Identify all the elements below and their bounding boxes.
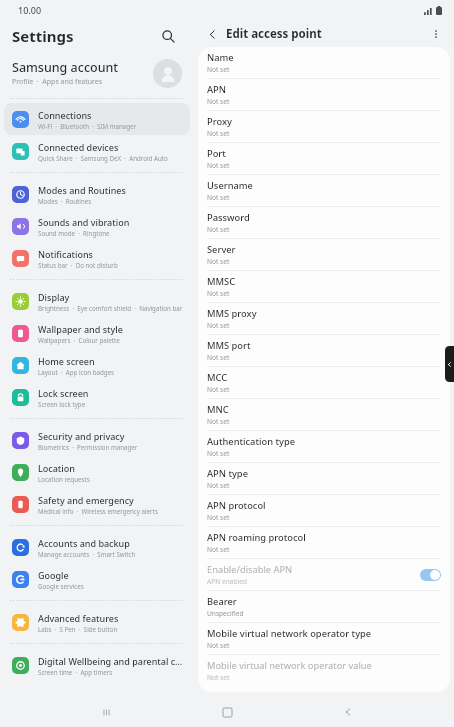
button[interactable]: Notifications bbox=[4, 242, 190, 274]
staticText: Sounds and vibration bbox=[38, 216, 130, 228]
button[interactable]: Connections bbox=[4, 103, 190, 135]
staticText: MCC bbox=[207, 371, 228, 384]
staticText: Not set bbox=[207, 641, 230, 650]
button[interactable]: Enable/disable APN bbox=[198, 559, 450, 590]
staticText: Modes and Routines bbox=[38, 184, 126, 196]
button[interactable]: Password bbox=[198, 207, 450, 238]
staticText: Safety and emergency bbox=[38, 494, 134, 506]
staticText: Proxy bbox=[207, 115, 232, 128]
staticText: Not set bbox=[207, 65, 230, 74]
button[interactable]: Port bbox=[198, 143, 450, 174]
staticText: Port bbox=[207, 147, 226, 160]
button[interactable]: APN type bbox=[198, 463, 450, 494]
button[interactable]: Wallpaper and style bbox=[4, 317, 190, 349]
staticText: Not set bbox=[207, 417, 230, 426]
button[interactable]: Proxy bbox=[198, 111, 450, 142]
button[interactable]: Location bbox=[4, 456, 190, 488]
staticText: Not set bbox=[207, 161, 230, 170]
staticText: Manage accounts · Smart Switch bbox=[38, 550, 136, 558]
button[interactable]: Home screen bbox=[4, 349, 190, 381]
staticText: Not set bbox=[207, 321, 230, 330]
button[interactable]: Modes and Routines bbox=[4, 178, 190, 210]
staticText: Google services bbox=[38, 582, 84, 590]
button[interactable]: Digital Wellbeing and parental controls bbox=[4, 649, 190, 681]
staticText: APN roaming protocol bbox=[207, 531, 306, 544]
staticText: Server bbox=[207, 243, 236, 256]
button[interactable]: Server bbox=[198, 239, 450, 270]
staticText: Authentication type bbox=[207, 435, 295, 448]
button[interactable]: Mobile virtual network operator type bbox=[198, 623, 450, 654]
staticText: Password bbox=[207, 211, 250, 224]
button[interactable]: MNC bbox=[198, 399, 450, 430]
staticText: Digital Wellbeing and parental controls bbox=[38, 655, 184, 667]
staticText: Medical info · Wireless emergency alerts bbox=[38, 507, 158, 515]
staticText: Notifications bbox=[38, 248, 93, 260]
staticText: Not set bbox=[207, 545, 230, 554]
staticText: Accounts and backup bbox=[38, 537, 130, 549]
staticText: MMS port bbox=[207, 339, 251, 352]
button[interactable]: Connected devices bbox=[4, 135, 190, 167]
staticText: Screen time · App timers bbox=[38, 668, 113, 676]
staticText: Wallpapers · Colour palette bbox=[38, 336, 120, 344]
staticText: Not set bbox=[207, 225, 230, 234]
button[interactable]: Recents bbox=[91, 697, 121, 727]
button[interactable]: More options bbox=[426, 24, 446, 44]
button[interactable]: MCC bbox=[198, 367, 450, 398]
staticText: Brightness · Eye comfort shield · Naviga… bbox=[38, 304, 183, 312]
button[interactable]: Security and privacy bbox=[4, 424, 190, 456]
staticText: Not set bbox=[207, 385, 230, 394]
button[interactable]: Home bbox=[212, 697, 242, 727]
staticText: Status bar · Do not disturb bbox=[38, 261, 118, 269]
button[interactable]: Accounts and backup bbox=[4, 531, 190, 563]
button[interactable]: Search bbox=[156, 24, 180, 48]
button[interactable]: Advanced features bbox=[4, 606, 190, 638]
button[interactable]: MMSC bbox=[198, 271, 450, 302]
button[interactable]: Display bbox=[4, 285, 190, 317]
staticText: MMSC bbox=[207, 275, 236, 288]
staticText: Advanced features bbox=[38, 612, 119, 624]
staticText: Not set bbox=[207, 289, 230, 298]
staticText: Unspecified bbox=[207, 609, 244, 618]
button[interactable]: Bearer bbox=[198, 591, 450, 622]
staticText: Not set bbox=[207, 513, 230, 522]
button[interactable]: APN protocol bbox=[198, 495, 450, 526]
staticText: Display bbox=[38, 291, 70, 303]
staticText: Google bbox=[38, 569, 69, 581]
button[interactable]: MMS port bbox=[198, 335, 450, 366]
button[interactable]: Google bbox=[4, 563, 190, 595]
staticText: Name bbox=[207, 51, 234, 64]
button[interactable]: APN roaming protocol bbox=[198, 527, 450, 558]
button[interactable]: Sounds and vibration bbox=[4, 210, 190, 242]
staticText: Not set bbox=[207, 97, 230, 106]
staticText: Modes · Routines bbox=[38, 197, 92, 205]
button[interactable]: Safety and emergency bbox=[4, 488, 190, 520]
staticText: APN type bbox=[207, 467, 248, 480]
staticText: APN protocol bbox=[207, 499, 266, 512]
button[interactable]: Lock screen bbox=[4, 381, 190, 413]
staticText: APN bbox=[207, 83, 226, 96]
staticText: Wallpaper and style bbox=[38, 323, 123, 335]
staticText: Settings bbox=[12, 26, 74, 46]
staticText: Lock screen bbox=[38, 387, 89, 399]
staticText: Not set bbox=[207, 353, 230, 362]
button[interactable]: APN bbox=[198, 79, 450, 110]
staticText: Location bbox=[38, 462, 75, 474]
button[interactable]: Name bbox=[198, 47, 450, 78]
button[interactable]: MMS proxy bbox=[198, 303, 450, 334]
staticText: Edit access point bbox=[226, 26, 322, 42]
staticText: Not set bbox=[207, 129, 230, 138]
button[interactable]: Username bbox=[198, 175, 450, 206]
staticText: Quick Share · Samsung DeX · Android Auto bbox=[38, 154, 168, 162]
staticText: Not set bbox=[207, 257, 230, 266]
staticText: MMS proxy bbox=[207, 307, 257, 320]
button[interactable]: Back bbox=[333, 697, 363, 727]
staticText: Profile · Apps and features bbox=[12, 77, 103, 87]
button[interactable]: Authentication type bbox=[198, 431, 450, 462]
button[interactable]: Back bbox=[202, 24, 222, 44]
staticText: Layout · App icon badges bbox=[38, 368, 115, 376]
button[interactable]: Mobile virtual network operator value bbox=[198, 655, 450, 686]
staticText: Mobile virtual network operator value bbox=[207, 659, 372, 672]
button[interactable]: Enable or disable APN bbox=[420, 569, 441, 581]
staticText: Samsung account bbox=[12, 59, 119, 76]
button[interactable]: Samsung account bbox=[0, 52, 194, 94]
